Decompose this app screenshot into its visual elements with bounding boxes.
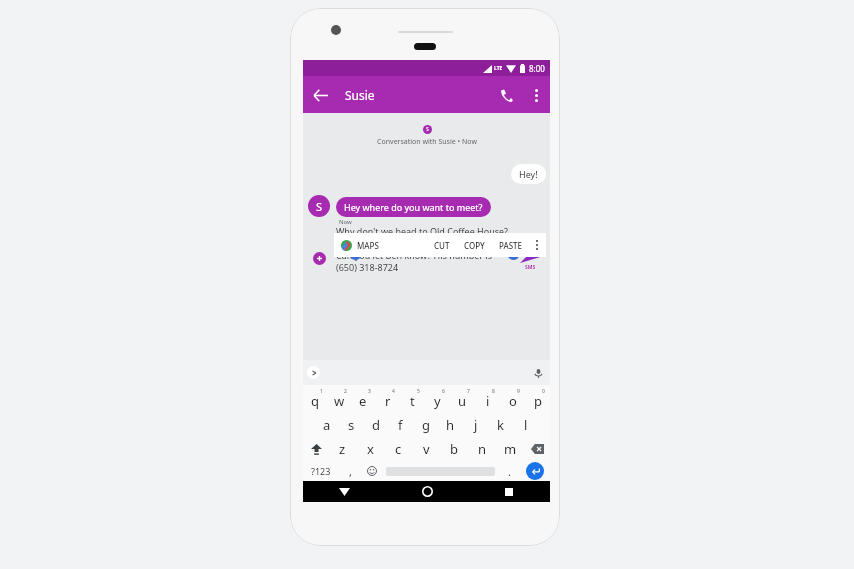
staticText: c [395,440,402,458]
button[interactable]: ?123 [303,461,339,481]
staticText: e [359,392,367,410]
staticText: h [446,416,455,434]
staticText: m [504,440,517,458]
staticText: n [478,440,487,458]
staticText: 8 [492,388,495,395]
button[interactable]: g [413,412,438,437]
staticText: (650) 318-8724 [336,261,399,273]
staticText: z [339,440,346,458]
button[interactable]: 4 [375,385,400,412]
staticText: a [323,416,331,434]
staticText: Can you let Ben know? His number is [336,249,493,261]
staticText: CUT [434,240,450,251]
button[interactable]: 0 [525,385,550,412]
staticText: r [385,392,391,410]
button[interactable]: v [412,437,440,461]
staticText: 5 [417,388,420,395]
staticText: 1 [320,388,323,395]
button[interactable]: 6 [425,385,450,412]
staticText: d [372,416,380,434]
button[interactable]: PASTE [494,233,528,257]
staticText: q [311,392,319,410]
staticText: y [434,392,441,410]
button[interactable]: MAPS [334,233,385,257]
staticText: Hey where do you want to meet? [344,201,483,213]
staticText: t [410,392,415,410]
button[interactable]: f [388,412,413,437]
button[interactable]: Recents [468,481,550,502]
staticText: 9 [517,388,520,395]
staticText: MAPS [357,240,379,251]
button[interactable]: a [315,412,339,437]
button[interactable]: 5 [400,385,425,412]
staticText: SMS [525,264,536,271]
button[interactable]: More options [522,81,550,109]
button[interactable]: Attach [313,252,326,265]
staticText: , [349,464,352,479]
button[interactable]: More [528,233,546,257]
button[interactable]: n [468,437,496,461]
button[interactable]: 8 [475,385,500,412]
staticText: 3 [368,388,371,395]
staticText: S [316,199,323,214]
button[interactable]: d [363,412,388,437]
staticText: 8:00 [529,63,545,74]
button[interactable]: b [440,437,468,461]
button[interactable]: Enter [526,462,544,480]
staticText: PASTE [499,240,523,251]
staticText: f [398,416,403,434]
staticText: s [348,416,355,434]
staticText: Why don't we head to Old Coffee House? [336,225,509,237]
staticText: LTE [494,65,503,72]
staticText: 201 Forest Ave Palo Alto, CA 94306 [362,237,508,249]
staticText: i [486,392,490,410]
button[interactable]: Call [490,79,522,111]
staticText: . [508,237,511,249]
staticText: 2 [344,388,347,395]
staticText: w [334,392,345,410]
button[interactable]: l [513,412,538,437]
button[interactable]: 3 [351,385,375,412]
button[interactable]: j [463,412,488,437]
button[interactable]: Shift [303,437,329,461]
button[interactable]: Home [386,481,468,502]
staticText: 7 [467,388,470,395]
button[interactable]: 2 [327,385,351,412]
button[interactable]: m [496,437,524,461]
staticText: ?123 [311,465,331,477]
button[interactable]: k [488,412,513,437]
button[interactable]: Hey where do you want to meet? [336,197,491,217]
button[interactable]: 7 [450,385,475,412]
button[interactable]: , [339,461,361,481]
staticText: u [458,392,467,410]
staticText: 4 [392,388,395,395]
button[interactable]: 1 [303,385,327,412]
staticText: Now [339,218,352,226]
staticText: o [509,392,517,410]
staticText: 6 [442,388,445,395]
button[interactable]: s [339,412,363,437]
staticText: v [423,440,430,458]
button[interactable]: Emoji [361,461,383,481]
button[interactable]: Hey! [511,164,546,184]
button[interactable]: . [498,461,520,481]
button[interactable]: h [438,412,463,437]
button[interactable]: Back [303,481,386,502]
button[interactable]: z [329,437,356,461]
button[interactable]: CUT [429,233,455,257]
staticText: b [450,440,458,458]
staticText: k [497,416,504,434]
button[interactable]: x [356,437,384,461]
button[interactable]: Backspace [524,437,550,461]
button[interactable]: Expand [307,366,320,379]
button[interactable]: Voice input [531,366,545,380]
staticText: Conversation with Susie • Now [377,137,477,147]
button[interactable]: c [384,437,412,461]
button[interactable]: Back [303,78,337,112]
staticText: p [534,392,542,410]
button[interactable]: 9 [500,385,525,412]
staticText: COPY [464,240,485,251]
button[interactable]: COPY [459,233,490,257]
button[interactable]: Send [519,247,543,265]
